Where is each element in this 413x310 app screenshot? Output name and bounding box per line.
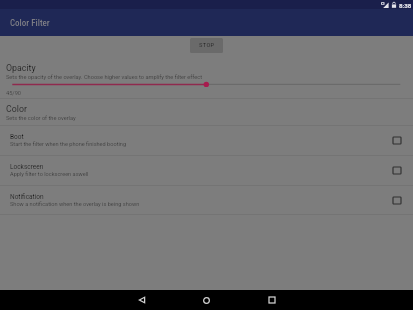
button[interactable]: Home: [194, 290, 218, 310]
staticText: 8:38: [399, 2, 412, 9]
button[interactable]: Boot: [0, 125, 413, 155]
button[interactable]: Lockscreen: [0, 155, 413, 185]
staticText: Notification: [10, 193, 44, 201]
staticText: STOP: [199, 42, 215, 49]
staticText: 45/90: [6, 90, 22, 97]
button[interactable]: STOP: [190, 38, 223, 53]
staticText: Sets the opacity of the overlay. Choose …: [6, 74, 202, 81]
staticText: Boot: [10, 133, 24, 141]
staticText: Start the filter when the phone finished…: [10, 141, 127, 148]
staticText: Show a notification when the overlay is …: [10, 201, 140, 208]
staticText: Apply filter to lockscreen aswell: [10, 171, 89, 178]
button[interactable]: Back: [130, 290, 154, 310]
staticText: Color Filter: [10, 18, 50, 29]
staticText: Opacity: [6, 63, 36, 73]
button[interactable]: Notification: [0, 185, 413, 215]
staticText: Lockscreen: [10, 163, 44, 171]
staticText: Color: [6, 104, 27, 114]
button[interactable]: Recent apps: [260, 290, 284, 310]
staticText: Sets the color of the overlay: [6, 115, 76, 122]
